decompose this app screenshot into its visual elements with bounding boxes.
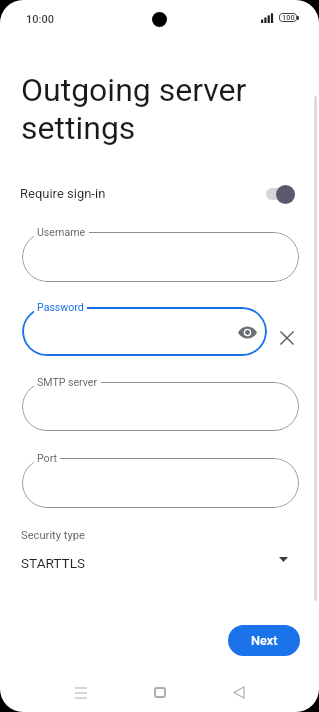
- staticText: Require sign-in: [20, 186, 106, 201]
- staticText: STARTTLS: [21, 555, 86, 571]
- staticText: 100: [282, 13, 295, 22]
- staticText: Port: [37, 452, 57, 464]
- staticText: 10:00: [26, 13, 54, 26]
- button[interactable]: Require sign-in: [0, 177, 319, 210]
- button[interactable]: Home: [145, 678, 174, 707]
- button[interactable]: [22, 307, 267, 356]
- button[interactable]: [22, 382, 299, 431]
- button[interactable]: Clear password: [275, 326, 299, 350]
- staticText: Outgoing server settings: [21, 71, 247, 147]
- button[interactable]: Security type: [0, 521, 319, 579]
- button[interactable]: Require sign-in toggle: [266, 184, 295, 204]
- staticText: Password: [37, 301, 84, 313]
- staticText: SMTP server: [37, 376, 98, 388]
- button[interactable]: [22, 232, 299, 282]
- button[interactable]: Back: [224, 678, 253, 707]
- button[interactable]: [22, 458, 299, 508]
- staticText: Next: [251, 633, 278, 648]
- button[interactable]: Show password: [235, 320, 259, 344]
- button[interactable]: Recent apps: [66, 678, 95, 707]
- staticText: Security type: [21, 529, 86, 542]
- button[interactable]: Next: [228, 625, 300, 656]
- staticText: Username: [37, 226, 86, 238]
